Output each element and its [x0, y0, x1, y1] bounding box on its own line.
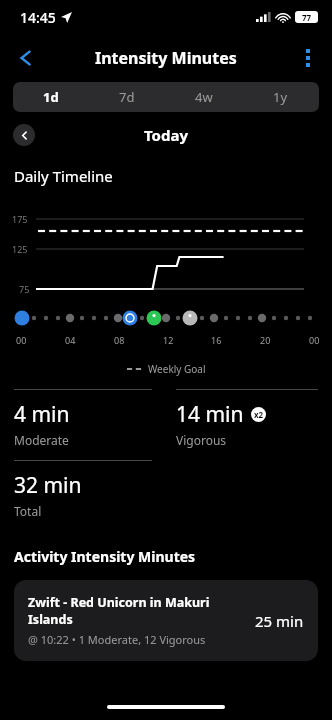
staticText: 1d: [43, 88, 59, 106]
staticText: 14 min: [176, 400, 244, 429]
staticText: 08: [114, 334, 125, 346]
button[interactable]: Back: [8, 40, 44, 76]
button[interactable]: 4w: [165, 82, 242, 112]
staticText: 4w: [195, 88, 213, 106]
staticText: 1y: [273, 88, 288, 106]
staticText: Vigorous: [176, 432, 227, 448]
staticText: 75: [19, 283, 30, 295]
staticText: 7d: [119, 88, 135, 106]
staticText: x2: [254, 409, 264, 420]
staticText: Weekly Goal: [148, 362, 206, 376]
staticText: 32 min: [14, 471, 82, 500]
staticText: 16: [211, 334, 222, 346]
staticText: 00: [309, 334, 320, 346]
staticText: Zwift - Red Unicorn in Makuri Islands: [28, 594, 247, 628]
staticText: @ 10:22 • 1 Moderate, 12 Vigorous: [28, 632, 206, 647]
staticText: 04: [65, 334, 76, 346]
button[interactable]: 7d: [89, 82, 165, 112]
staticText: 12: [163, 334, 174, 346]
staticText: 175: [12, 213, 28, 225]
staticText: 20: [260, 334, 271, 346]
button[interactable]: 1d: [13, 82, 89, 112]
staticText: 25 min: [255, 611, 304, 631]
staticText: 77: [302, 12, 312, 23]
button[interactable]: Previous day: [13, 124, 35, 146]
staticText: Total: [14, 503, 42, 519]
staticText: Today: [144, 125, 189, 145]
staticText: 00: [16, 334, 27, 346]
staticText: Intensity Minutes: [95, 47, 237, 69]
button[interactable]: 1y: [242, 82, 319, 112]
staticText: 14:45: [20, 8, 56, 27]
staticText: Daily Timeline: [14, 166, 113, 186]
staticText: Activity Intensity Minutes: [14, 547, 196, 566]
button[interactable]: More options: [290, 40, 326, 76]
staticText: Moderate: [14, 432, 69, 448]
staticText: 125: [12, 243, 28, 255]
staticText: 4 min: [14, 400, 70, 429]
button[interactable]: Zwift - Red Unicorn in Makuri Islands: [14, 580, 318, 661]
